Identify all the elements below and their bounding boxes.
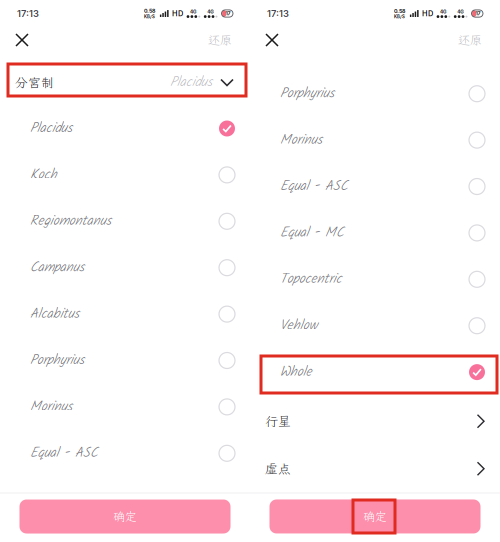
button[interactable]: Equal - ASC <box>0 430 250 476</box>
button[interactable]: Koch <box>0 152 250 198</box>
button[interactable]: Close <box>266 27 278 53</box>
staticText: 17 <box>475 10 480 17</box>
button[interactable]: Porphyrius <box>0 337 250 384</box>
button[interactable]: Morinus <box>250 117 500 163</box>
staticText: 虚点 <box>265 460 291 477</box>
button[interactable]: Campanus <box>0 244 250 291</box>
staticText: 4G <box>457 9 464 15</box>
button[interactable]: 确定 <box>19 499 230 533</box>
staticText: HD <box>172 9 183 18</box>
staticText: Placidus <box>170 72 212 93</box>
staticText: 4G <box>207 9 214 14</box>
button[interactable]: Whole <box>250 349 500 395</box>
button[interactable]: 虚点 <box>250 445 500 492</box>
staticText: Porphyrius <box>280 83 334 104</box>
staticText: Morinus <box>30 396 72 418</box>
staticText: KB/S <box>394 14 405 19</box>
button[interactable]: Vehlow <box>250 302 500 349</box>
staticText: 0.58 <box>144 8 155 14</box>
staticText: 分宫制 <box>15 74 54 91</box>
staticText: 0.58 <box>394 8 405 14</box>
staticText: 4G <box>190 9 197 14</box>
staticText: 行星 <box>265 413 291 430</box>
button[interactable]: 行星 <box>250 397 500 445</box>
staticText: Placidus <box>30 118 72 139</box>
staticText: 17:13 <box>17 8 39 19</box>
staticText: Campanus <box>30 257 84 278</box>
button[interactable]: 分宫制 <box>0 67 250 98</box>
button[interactable]: Equal - MC <box>250 210 500 256</box>
button[interactable]: Porphyrius <box>250 70 500 117</box>
button[interactable]: Placidus <box>0 105 250 152</box>
staticText: Equal - MC <box>280 222 344 244</box>
staticText: 还原 <box>208 32 232 48</box>
staticText: Equal - ASC <box>280 176 348 197</box>
button[interactable]: Morinus <box>0 384 250 430</box>
staticText: KB/S <box>144 14 155 19</box>
button[interactable]: 确定 <box>269 499 480 533</box>
button[interactable]: Topocentric <box>250 256 500 302</box>
button[interactable]: 还原 <box>208 27 232 53</box>
staticText: Porphyrius <box>30 350 84 371</box>
staticText: 确定 <box>113 509 137 524</box>
staticText: Vehlow <box>280 315 318 336</box>
staticText: 还原 <box>458 32 482 48</box>
staticText: Equal - ASC <box>30 443 98 464</box>
staticText: Topocentric <box>280 269 342 290</box>
staticText: 17 <box>225 10 230 17</box>
staticText: Regiomontanus <box>30 211 111 232</box>
button[interactable]: Close <box>16 27 28 53</box>
staticText: Koch <box>30 164 57 186</box>
staticText: HD <box>422 9 433 18</box>
button[interactable]: 还原 <box>458 27 482 53</box>
button[interactable]: Equal - ASC <box>250 163 500 210</box>
staticText: 4G <box>440 9 447 15</box>
staticText: 确定 <box>363 509 387 524</box>
staticText: Whole <box>280 361 312 383</box>
staticText: Alcabitus <box>30 303 79 325</box>
staticText: 17:13 <box>267 8 289 19</box>
button[interactable]: Alcabitus <box>0 291 250 337</box>
button[interactable]: Regiomontanus <box>0 198 250 244</box>
staticText: Morinus <box>280 129 322 151</box>
